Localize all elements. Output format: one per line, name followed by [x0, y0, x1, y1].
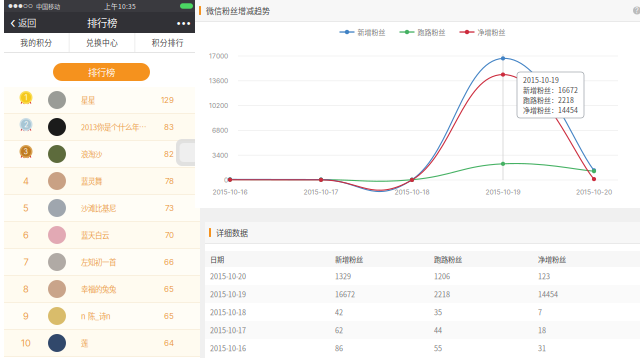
- staticText: 70: [165, 230, 174, 240]
- staticText: 8: [23, 283, 29, 295]
- staticText: 返回: [18, 16, 36, 29]
- staticText: 跑路粉丝：2218: [523, 95, 574, 105]
- staticText: 62: [335, 325, 343, 335]
- staticText: 2015-10-16: [210, 343, 246, 353]
- staticText: 左知初一首: [81, 257, 116, 267]
- staticText: 新增粉丝: [335, 254, 363, 264]
- staticText: ‹: [10, 14, 16, 31]
- staticText: 10: [21, 337, 31, 349]
- staticText: 排行榜: [88, 65, 115, 79]
- button[interactable]: 9: [4, 303, 200, 330]
- button[interactable]: 跑路粉丝: [399, 27, 445, 37]
- staticText: 3: [23, 147, 28, 156]
- button[interactable]: 10: [4, 330, 200, 357]
- staticText: 2015-10-20: [576, 188, 612, 196]
- staticText: 2015-10-17: [303, 188, 338, 196]
- staticText: n 陈_诗n: [81, 311, 111, 321]
- staticText: 3400: [212, 151, 228, 159]
- staticText: 2015-10-16: [212, 188, 247, 196]
- staticText: 2: [24, 120, 28, 129]
- staticText: 2015-10-18: [394, 188, 429, 196]
- staticText: 7: [538, 307, 542, 317]
- staticText: 2015-10-19: [485, 188, 520, 196]
- staticText: 我的积分: [20, 37, 52, 48]
- button[interactable]: 1: [4, 87, 200, 114]
- button[interactable]: 4: [4, 168, 200, 195]
- staticText: 兑换中心: [86, 37, 118, 48]
- staticText: 莲: [81, 338, 88, 348]
- staticText: 6: [23, 229, 29, 241]
- staticText: 78: [165, 176, 174, 186]
- staticText: 蓝灵舞: [81, 176, 102, 186]
- staticText: 123: [538, 271, 550, 281]
- staticText: 幸福的兔兔: [81, 284, 116, 294]
- staticText: 上午10:35: [104, 1, 136, 11]
- button[interactable]: 新增粉丝: [339, 27, 385, 37]
- staticText: 4: [23, 175, 29, 187]
- staticText: 44: [434, 325, 442, 335]
- button[interactable]: 积分排行: [135, 33, 200, 52]
- staticText: 净增粉丝: [538, 254, 566, 264]
- button[interactable]: 8: [4, 276, 200, 303]
- staticText: 沙滩比基尼: [81, 203, 116, 213]
- staticText: 10200: [209, 102, 228, 110]
- staticText: 83: [164, 122, 174, 132]
- staticText: 7: [23, 256, 28, 268]
- button[interactable]: 6: [4, 222, 200, 249]
- button[interactable]: AssistiveTouch: [175, 138, 203, 167]
- staticText: 9: [23, 310, 29, 322]
- button[interactable]: 3: [4, 141, 200, 168]
- staticText: 1329: [335, 271, 351, 281]
- button[interactable]: 5: [4, 195, 200, 222]
- staticText: 跑路粉丝: [417, 27, 445, 37]
- button[interactable]: 2: [4, 114, 200, 141]
- staticText: 净增粉丝: [477, 27, 505, 37]
- staticText: ?: [635, 6, 639, 15]
- button[interactable]: ‹: [4, 14, 36, 31]
- staticText: 17000: [209, 52, 228, 60]
- staticText: 2015-10-19: [210, 289, 246, 299]
- staticText: 16672: [335, 289, 355, 299]
- staticText: 129: [161, 95, 174, 105]
- button[interactable]: 排行榜: [53, 63, 150, 81]
- staticText: 积分排行: [152, 37, 184, 48]
- staticText: 1206: [434, 271, 450, 281]
- staticText: 蓝天白云: [81, 230, 109, 240]
- staticText: 86: [335, 343, 343, 353]
- staticText: 日期: [210, 254, 224, 264]
- button[interactable]: Help: [630, 3, 640, 17]
- button[interactable]: 我的积分: [4, 33, 69, 52]
- button[interactable]: 7: [4, 249, 200, 276]
- staticText: 2218: [434, 289, 450, 299]
- staticText: 详细数据: [216, 227, 248, 238]
- staticText: 55: [434, 343, 442, 353]
- staticText: 0: [224, 176, 228, 184]
- staticText: 42: [335, 307, 343, 317]
- staticText: 66: [164, 257, 174, 267]
- staticText: 35: [434, 307, 442, 317]
- staticText: 2013你是个什么年…: [81, 122, 146, 132]
- staticText: 净增粉丝：14454: [523, 105, 578, 115]
- staticText: •••: [176, 17, 191, 28]
- staticText: 新增粉丝：16672: [523, 85, 578, 95]
- button[interactable]: 兑换中心: [70, 33, 134, 52]
- staticText: 浪淘沙: [81, 149, 102, 159]
- staticText: 73: [165, 203, 174, 213]
- staticText: 1: [24, 93, 27, 102]
- staticText: 14454: [538, 289, 558, 299]
- staticText: 5: [23, 202, 29, 214]
- staticText: 中国移动: [36, 2, 60, 10]
- staticText: ●●●○○: [8, 3, 33, 9]
- staticText: 跑路粉丝: [434, 254, 462, 264]
- staticText: 2015-10-20: [210, 271, 246, 281]
- staticText: 82: [164, 149, 174, 159]
- staticText: 31: [538, 343, 546, 353]
- staticText: 2015-10-19: [523, 75, 559, 85]
- button[interactable]: More options: [176, 17, 200, 28]
- staticText: 微信粉丝增减趋势: [206, 5, 270, 16]
- staticText: 13600: [209, 77, 228, 85]
- button[interactable]: 净增粉丝: [459, 27, 505, 37]
- staticText: 65: [164, 284, 174, 294]
- staticText: 新增粉丝: [357, 27, 385, 37]
- staticText: 65: [164, 311, 174, 321]
